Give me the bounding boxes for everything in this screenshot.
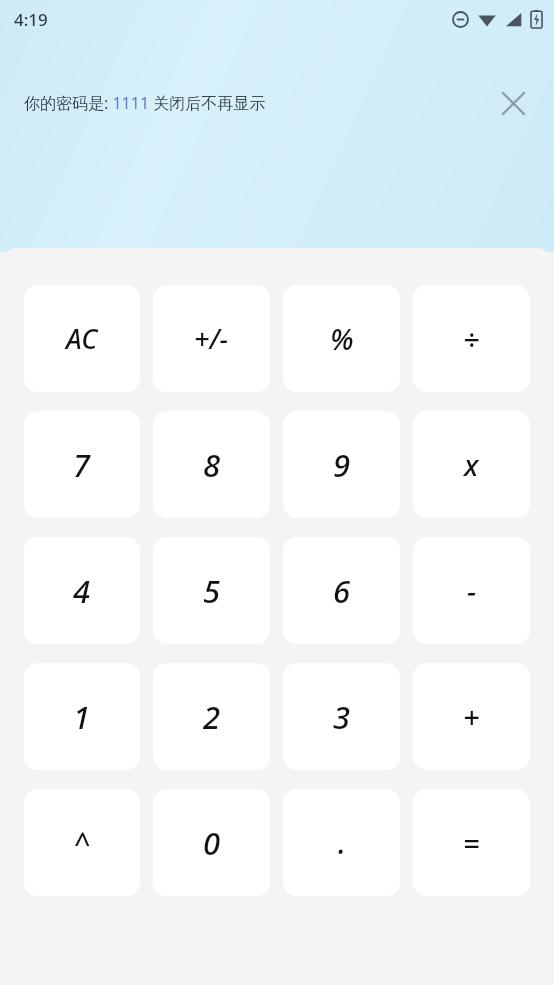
button[interactable]: . bbox=[283, 789, 400, 896]
staticText: 0 bbox=[203, 822, 221, 864]
button[interactable]: = bbox=[413, 789, 530, 896]
button[interactable]: ^ bbox=[24, 789, 140, 896]
button[interactable]: AC bbox=[24, 285, 140, 392]
button[interactable]: − bbox=[413, 537, 530, 644]
button[interactable]: 1 bbox=[24, 663, 140, 770]
staticText: 9 bbox=[333, 444, 351, 486]
staticText: 3 bbox=[333, 696, 351, 738]
button[interactable]: +/− bbox=[153, 285, 270, 392]
button[interactable]: 2 bbox=[153, 663, 270, 770]
button[interactable]: ÷ bbox=[413, 285, 530, 392]
button[interactable]: % bbox=[283, 285, 400, 392]
button[interactable]: + bbox=[413, 663, 530, 770]
button[interactable]: 5 bbox=[153, 537, 270, 644]
staticText: = bbox=[463, 823, 480, 862]
button[interactable]: 9 bbox=[283, 411, 400, 518]
button[interactable]: 3 bbox=[283, 663, 400, 770]
staticText: 1 bbox=[73, 696, 91, 738]
staticText: − bbox=[467, 571, 477, 610]
staticText: AC bbox=[66, 320, 98, 357]
button[interactable]: 8 bbox=[153, 411, 270, 518]
staticText: 4:19 bbox=[14, 8, 48, 31]
staticText: 你的密码是: 1111 关闭后不再显示 bbox=[24, 92, 492, 114]
button[interactable]: 7 bbox=[24, 411, 140, 518]
button[interactable]: x bbox=[413, 411, 530, 518]
staticText: + bbox=[463, 697, 480, 736]
staticText: 5 bbox=[203, 570, 221, 612]
staticText: ^ bbox=[74, 823, 91, 862]
staticText: 4 bbox=[73, 570, 91, 612]
staticText: +/− bbox=[194, 320, 229, 357]
staticText: 8 bbox=[203, 444, 221, 486]
staticText: % bbox=[330, 319, 354, 358]
staticText: 6 bbox=[333, 570, 351, 612]
button[interactable]: Close bbox=[492, 82, 534, 124]
staticText: x bbox=[464, 445, 479, 484]
button[interactable]: 0 bbox=[153, 789, 270, 896]
staticText: ÷ bbox=[463, 319, 480, 358]
staticText: 7 bbox=[73, 444, 91, 486]
button[interactable]: 4 bbox=[24, 537, 140, 644]
staticText: 2 bbox=[203, 696, 221, 738]
staticText: . bbox=[338, 822, 346, 863]
button[interactable]: 6 bbox=[283, 537, 400, 644]
